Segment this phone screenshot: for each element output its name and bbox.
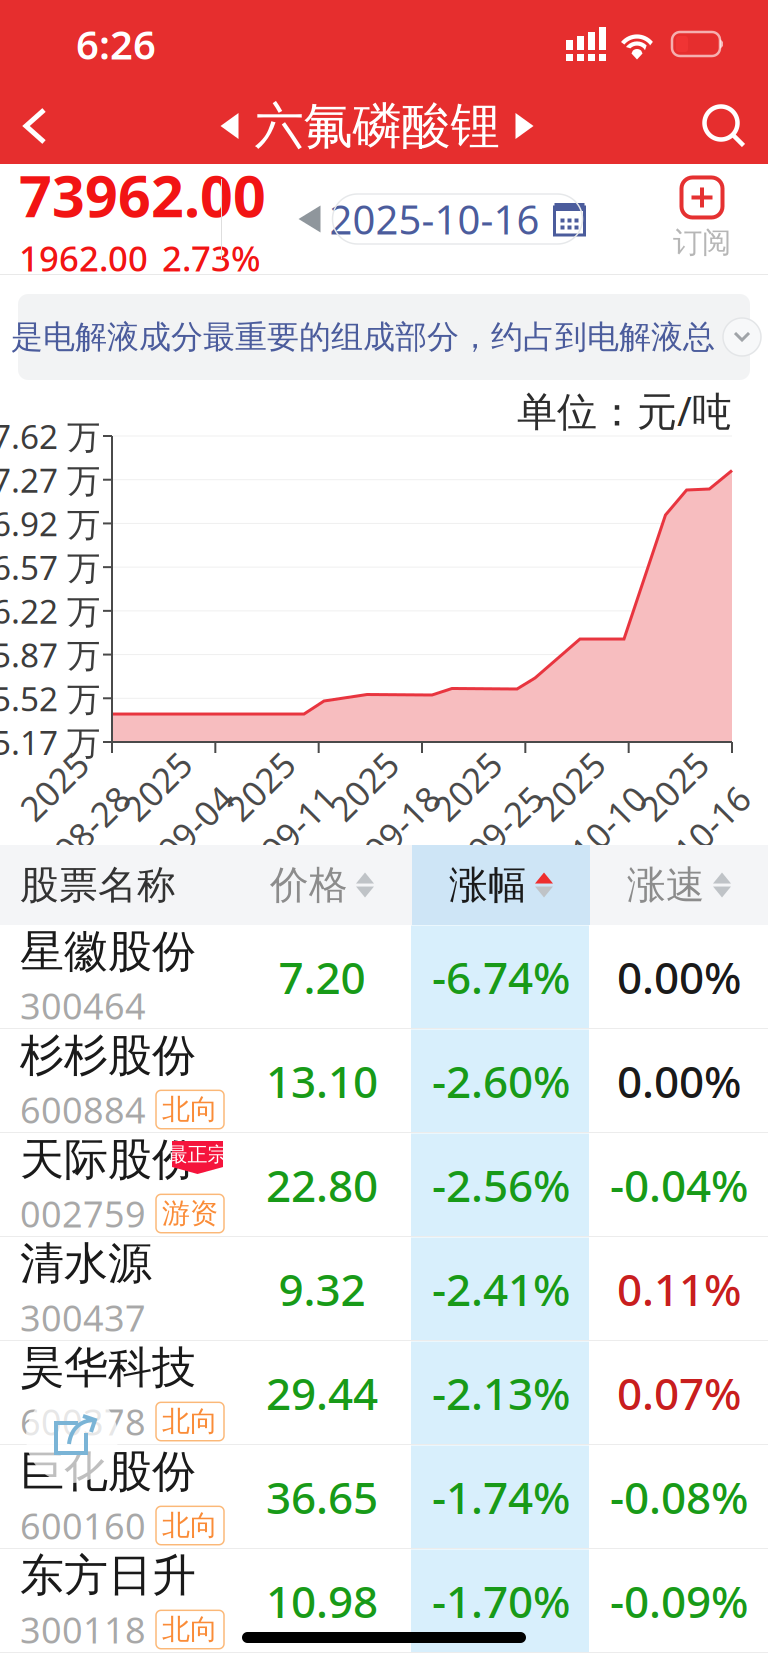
- button[interactable]: 涨幅: [412, 845, 590, 925]
- staticText: 2025: [117, 763, 197, 809]
- button[interactable]: 涨速: [590, 845, 768, 925]
- button[interactable]: 订阅: [647, 169, 757, 269]
- staticText: 6.22 万: [0, 589, 100, 633]
- button[interactable]: 昊华科技: [0, 1341, 768, 1445]
- button[interactable]: 是电解液成分最重要的组成部分，约占到电解液总: [18, 294, 750, 380]
- staticText: 5.17 万: [0, 720, 100, 764]
- staticText: 600378: [20, 1398, 146, 1445]
- staticText: -2.56%: [432, 1156, 570, 1214]
- staticText: 杉杉股份: [20, 1029, 196, 1083]
- staticText: 09-25: [460, 801, 551, 847]
- staticText: 涨速: [627, 861, 705, 909]
- staticText: 最正宗: [167, 1142, 227, 1167]
- staticText: 5.87 万: [0, 632, 100, 677]
- button[interactable]: Back: [0, 88, 74, 164]
- staticText: 10-10: [563, 801, 654, 847]
- staticText: 北向: [162, 1612, 218, 1647]
- staticText: -0.08%: [610, 1468, 748, 1526]
- staticText: 北向: [162, 1092, 218, 1127]
- staticText: 单位：元/吨: [517, 384, 732, 437]
- staticText: 10-16: [666, 801, 757, 847]
- staticText: 22.80: [266, 1156, 378, 1214]
- staticText: 6:26: [76, 17, 156, 70]
- staticText: 东方日升: [20, 1549, 196, 1603]
- staticText: 订阅: [673, 224, 731, 260]
- staticText: 游资: [162, 1196, 218, 1231]
- staticText: 36.65: [266, 1468, 378, 1526]
- staticText: 股票名称: [20, 861, 176, 909]
- staticText: 09-04: [150, 801, 241, 847]
- staticText: -2.60%: [432, 1052, 570, 1110]
- staticText: 北向: [162, 1404, 218, 1439]
- button[interactable]: 杉杉股份: [0, 1029, 768, 1133]
- staticText: 是电解液成分最重要的组成部分，约占到电解液总: [11, 317, 715, 357]
- staticText: 0.00%: [617, 1052, 741, 1110]
- button[interactable]: 东方日升: [0, 1549, 768, 1653]
- staticText: 7.20: [278, 948, 365, 1006]
- staticText: 13.10: [266, 1052, 378, 1110]
- staticText: 2025-10-16: [329, 192, 539, 245]
- button[interactable]: Previous day: [286, 205, 332, 232]
- staticText: 5.52 万: [0, 676, 100, 720]
- staticText: 2025: [14, 763, 94, 809]
- staticText: 300437: [20, 1294, 146, 1341]
- staticText: -1.70%: [432, 1572, 570, 1630]
- staticText: 六氟磷酸锂: [254, 96, 499, 156]
- button[interactable]: 2025-10-16: [332, 194, 582, 244]
- button[interactable]: Next: [499, 97, 549, 155]
- button[interactable]: Share: [26, 1391, 118, 1483]
- staticText: 2025: [531, 763, 611, 809]
- staticText: 北向: [162, 1508, 218, 1543]
- staticText: 09-18: [356, 801, 447, 847]
- staticText: 2.73%: [162, 235, 261, 281]
- staticText: 1962.00: [19, 235, 148, 281]
- staticText: 9.32: [278, 1260, 365, 1318]
- staticText: 73962.00: [19, 157, 266, 233]
- staticText: 2025: [427, 763, 507, 809]
- staticText: 涨幅: [449, 861, 527, 909]
- staticText: 2025: [324, 763, 404, 809]
- staticText: 002759: [20, 1190, 146, 1237]
- staticText: 7.27 万: [0, 458, 100, 502]
- staticText: 清水源: [20, 1237, 152, 1291]
- button[interactable]: Previous: [204, 97, 254, 155]
- staticText: -2.41%: [432, 1260, 570, 1318]
- staticText: 2025: [634, 763, 714, 809]
- staticText: 昊华科技: [20, 1341, 196, 1395]
- staticText: 0.11%: [617, 1260, 741, 1318]
- staticText: 08-28: [46, 801, 137, 847]
- staticText: 09-11: [253, 801, 344, 847]
- staticText: 星徽股份: [20, 925, 196, 979]
- staticText: 300464: [20, 982, 146, 1029]
- button[interactable]: 价格: [232, 845, 412, 925]
- staticText: -1.74%: [432, 1468, 570, 1526]
- staticText: -6.74%: [432, 948, 570, 1006]
- staticText: 600884: [20, 1086, 146, 1133]
- staticText: 价格: [270, 861, 348, 909]
- staticText: 0.07%: [617, 1364, 741, 1422]
- button[interactable]: 清水源: [0, 1237, 768, 1341]
- staticText: 600160: [20, 1502, 146, 1549]
- staticText: 0.00%: [617, 948, 741, 1006]
- button[interactable]: 星徽股份: [0, 925, 768, 1029]
- staticText: 6.57 万: [0, 545, 100, 589]
- button[interactable]: 巨化股份: [0, 1445, 768, 1549]
- button[interactable]: 天际股份: [0, 1133, 768, 1237]
- button[interactable]: Search: [680, 92, 768, 160]
- staticText: 29.44: [266, 1364, 378, 1422]
- staticText: -2.13%: [432, 1364, 570, 1422]
- staticText: 2025: [221, 763, 301, 809]
- staticText: 10.98: [266, 1572, 378, 1630]
- staticText: 天际股份: [20, 1133, 196, 1187]
- staticText: 6.92 万: [0, 501, 100, 546]
- staticText: 巨化股份: [20, 1445, 196, 1499]
- staticText: 7.62 万: [0, 414, 100, 458]
- staticText: -0.04%: [610, 1156, 748, 1214]
- staticText: 300118: [20, 1606, 146, 1653]
- staticText: -0.09%: [610, 1572, 748, 1630]
